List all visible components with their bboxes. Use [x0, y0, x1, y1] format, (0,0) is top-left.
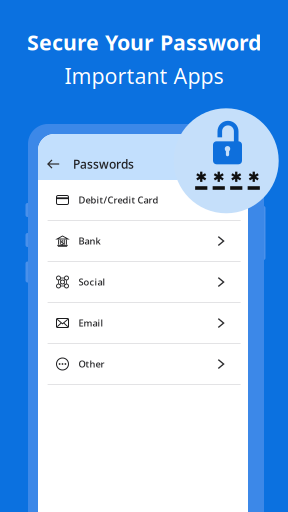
- button[interactable]: Other: [38, 344, 248, 385]
- button[interactable]: Social: [38, 262, 248, 303]
- staticText: Debit/Credit Card: [78, 194, 158, 206]
- button[interactable]: $: [38, 221, 248, 262]
- staticText: Email: [78, 317, 103, 329]
- button[interactable]: Debit/Credit Card: [38, 180, 248, 221]
- staticText: $: [60, 238, 64, 247]
- staticText: Passwords: [73, 156, 134, 172]
- button[interactable]: Back: [47, 157, 60, 170]
- staticText: Bank: [78, 235, 100, 247]
- staticText: Social: [78, 276, 105, 288]
- staticText: Other: [78, 358, 104, 370]
- staticText: Secure Your Password: [27, 28, 261, 56]
- button[interactable]: Email: [38, 303, 248, 344]
- staticText: Important Apps: [64, 61, 223, 90]
